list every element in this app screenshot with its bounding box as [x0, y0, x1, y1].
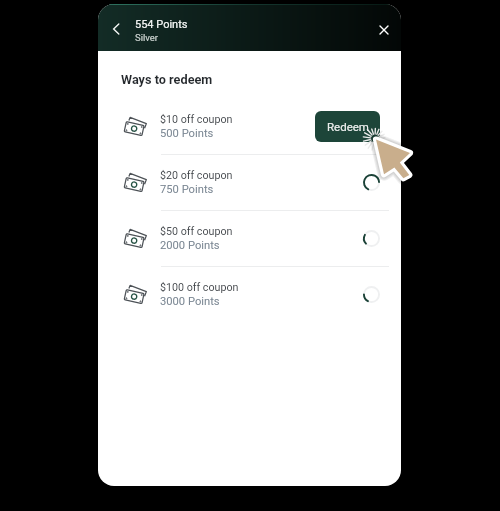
staticText: $100 off coupon — [160, 281, 239, 294]
staticText: $20 off coupon — [160, 169, 233, 182]
staticText: Redeem — [327, 120, 369, 133]
staticText: 3000 Points — [160, 295, 220, 308]
staticText: Ways to redeem — [121, 72, 213, 87]
staticText: 500 Points — [160, 127, 214, 140]
staticText: 750 Points — [160, 183, 214, 196]
staticText: Silver — [135, 32, 159, 43]
button[interactable]: Redeem — [315, 111, 380, 142]
button[interactable]: $20 off coupon — [98, 155, 401, 210]
staticText: 554 Points — [135, 18, 188, 31]
button[interactable]: Back — [101, 14, 131, 44]
button[interactable]: $100 off coupon — [98, 267, 401, 322]
button[interactable]: $10 off coupon — [98, 99, 401, 154]
button[interactable]: Close — [371, 17, 397, 43]
staticText: $10 off coupon — [160, 113, 233, 126]
staticText: $50 off coupon — [160, 225, 233, 238]
staticText: 2000 Points — [160, 239, 220, 252]
button[interactable]: $50 off coupon — [98, 211, 401, 266]
